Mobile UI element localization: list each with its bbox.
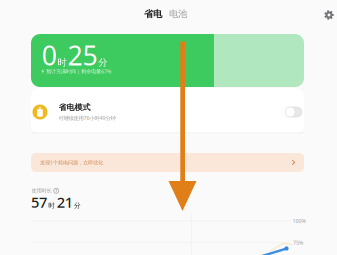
staticText: 省电模式 xyxy=(58,102,90,112)
staticText: 时 xyxy=(48,201,55,209)
staticText: 省电 xyxy=(144,8,162,20)
staticText: 0 xyxy=(42,37,57,73)
staticText: 可继续使用76小时49分钟 xyxy=(58,114,115,121)
staticText: 分 xyxy=(74,201,81,209)
staticText: 21 xyxy=(57,192,73,212)
button[interactable]: 省电 xyxy=(142,8,164,20)
staticText: 25 xyxy=(68,37,98,73)
staticText: 57 xyxy=(31,192,47,212)
staticText: 分 xyxy=(98,57,107,68)
button[interactable]: Settings xyxy=(320,6,337,24)
staticText: 时 xyxy=(57,57,66,68)
button[interactable]: 发现1个耗电问题，立即优化 xyxy=(31,153,304,172)
staticText: 电池 xyxy=(169,8,187,20)
button[interactable]: 省电模式 xyxy=(31,88,304,133)
button[interactable]: 电池 xyxy=(167,8,189,20)
staticText: 100% xyxy=(292,217,305,224)
staticText: 使用时长 xyxy=(31,187,51,194)
staticText: 75% xyxy=(293,239,303,246)
staticText: 预计充满时间 | 剩余电量67% xyxy=(46,68,111,75)
staticText: 发现1个耗电问题，立即优化 xyxy=(40,159,103,166)
